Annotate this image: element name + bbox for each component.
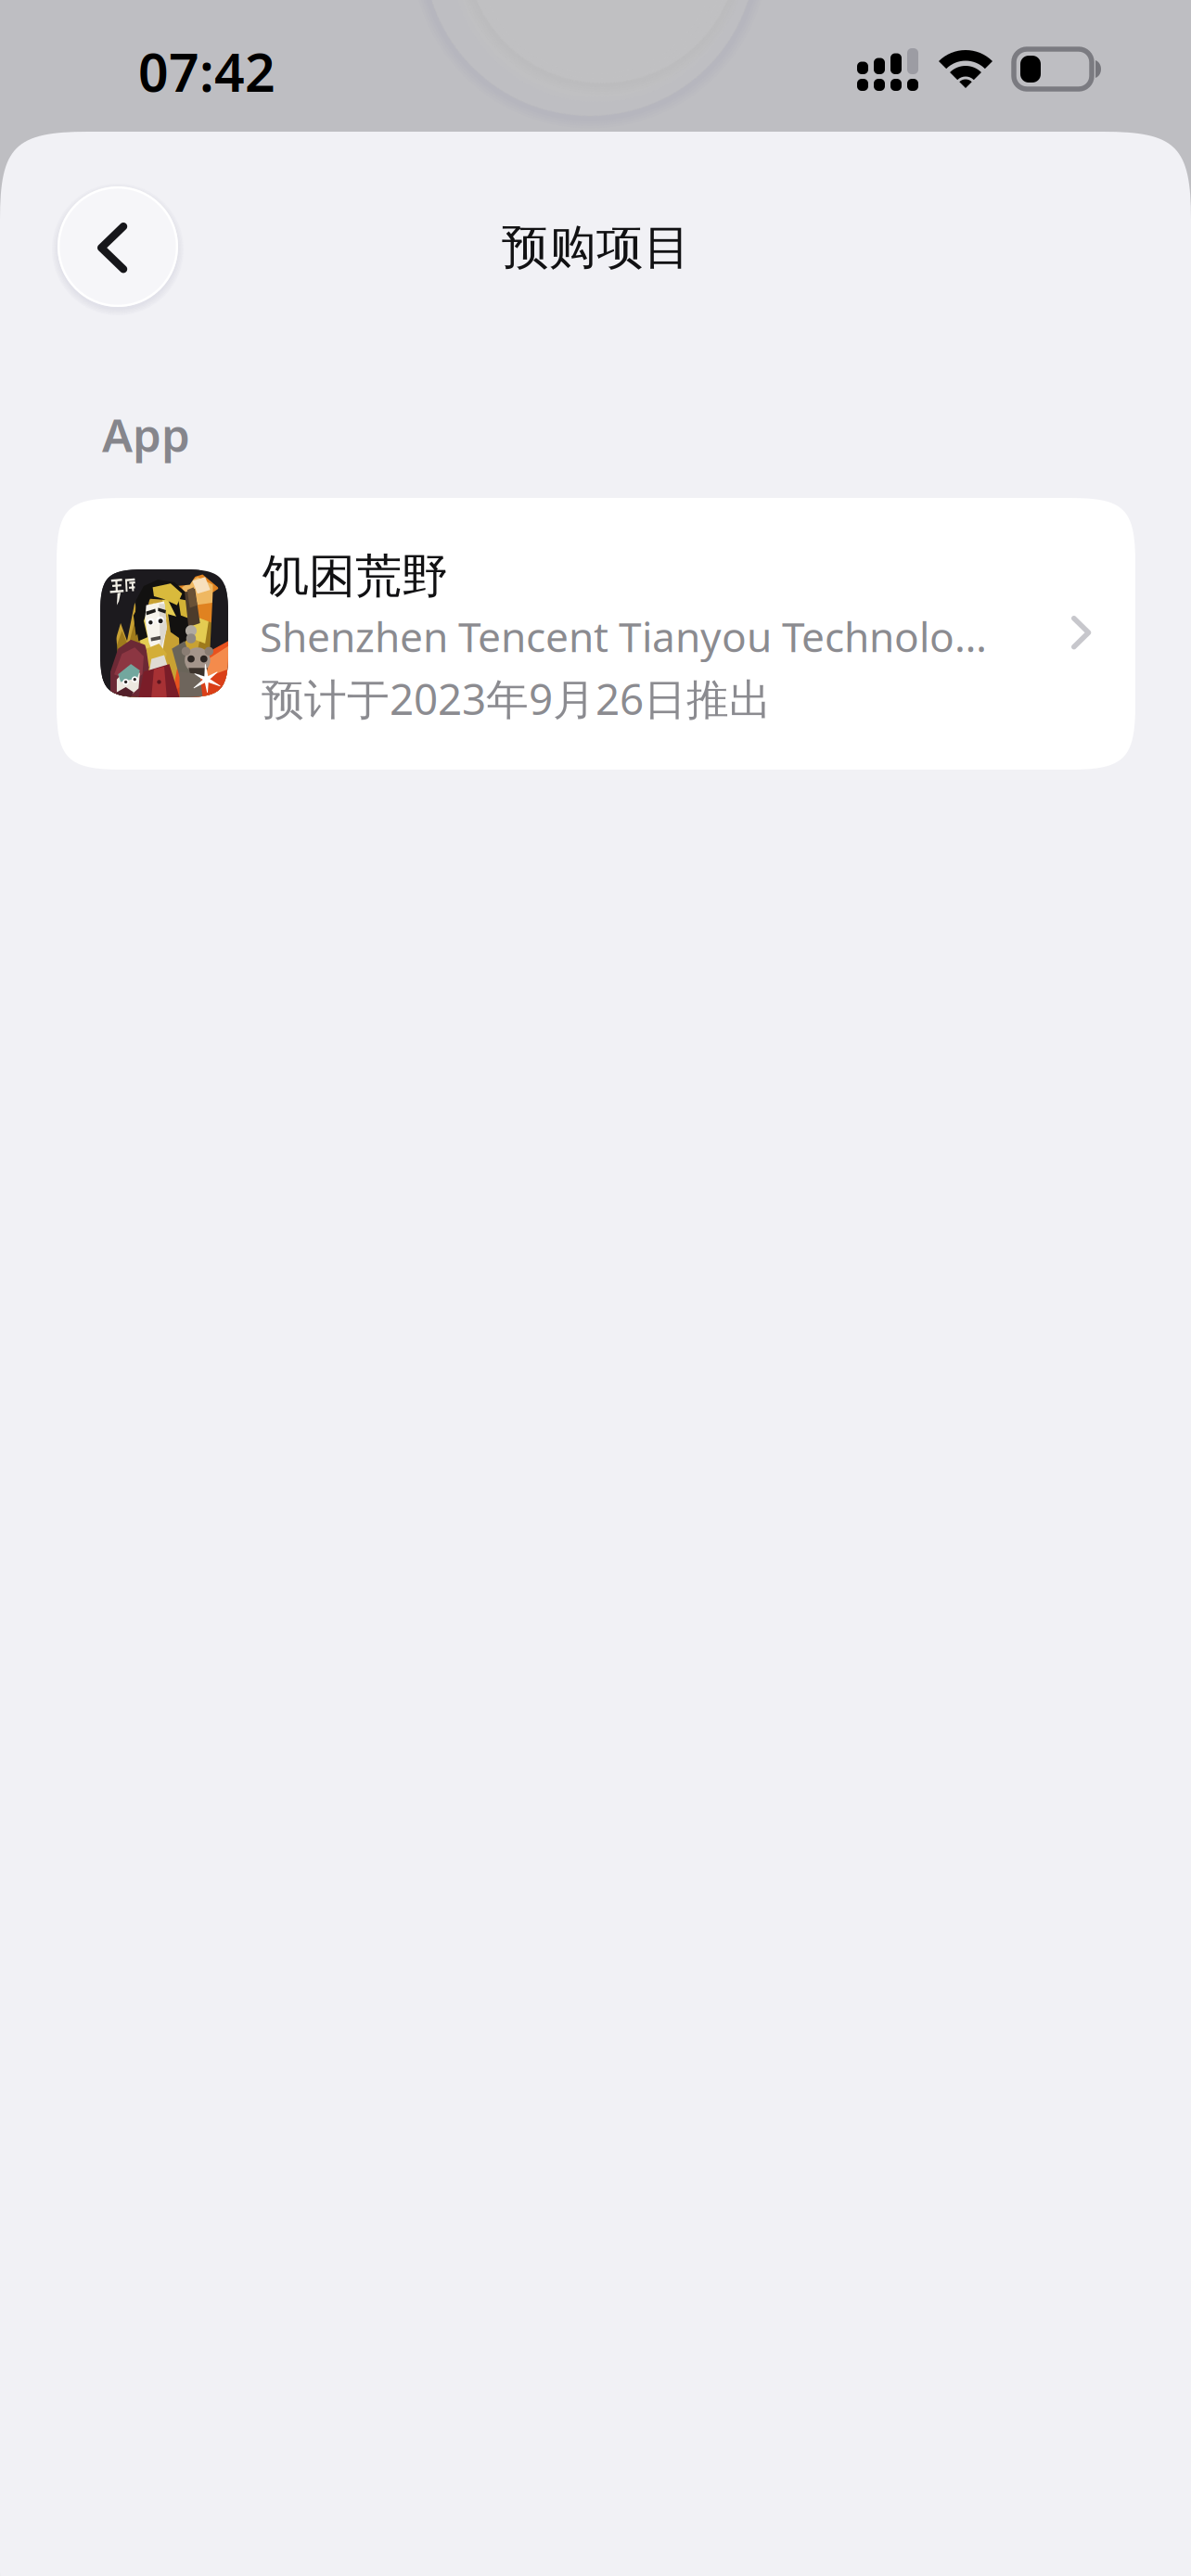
button[interactable]: Back xyxy=(58,186,178,307)
staticText: 预购项目 xyxy=(502,218,691,277)
staticText: 07:42 xyxy=(138,35,275,107)
staticText: App xyxy=(102,403,190,465)
staticText: Shenzhen Tencent Tianyou Technolo… xyxy=(260,608,987,664)
staticText: 预计于2023年9月26日推出 xyxy=(262,670,772,727)
button[interactable]: 饥困荒野 xyxy=(57,498,1135,770)
staticText: 饥困荒野 xyxy=(263,547,448,606)
